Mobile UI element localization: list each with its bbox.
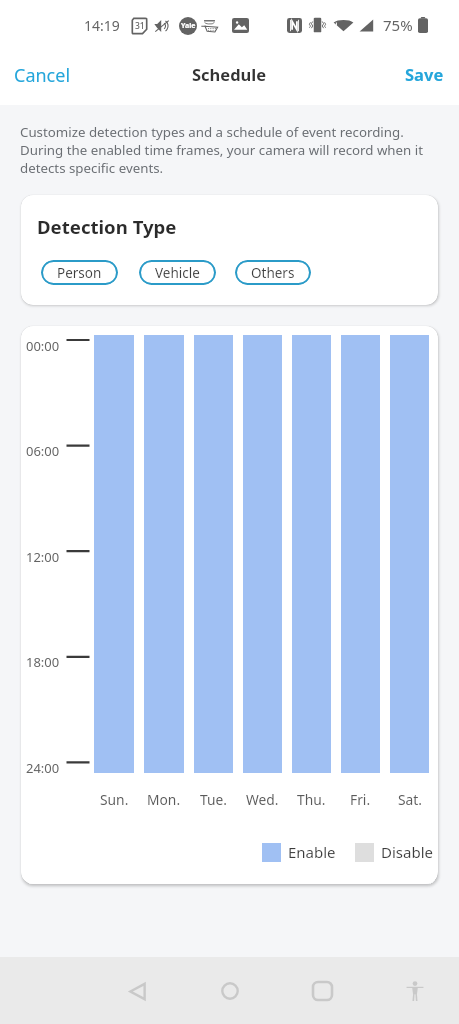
button[interactable]: Others xyxy=(235,260,311,285)
staticText: 24:00 xyxy=(26,759,60,777)
staticText: Others xyxy=(251,264,295,282)
staticText: 12:00 xyxy=(26,548,60,566)
staticText: Mon. xyxy=(147,790,181,809)
staticText: Vehicle xyxy=(155,264,200,282)
staticText: Fri. xyxy=(350,790,371,809)
staticText: 75% xyxy=(383,15,413,35)
staticText: Cancel xyxy=(14,63,71,88)
staticText: Yale xyxy=(181,21,196,31)
button[interactable]: Accessibility xyxy=(395,971,435,1011)
staticText: Sat. xyxy=(398,790,422,809)
staticText: Customize detection types and a schedule… xyxy=(20,123,429,177)
staticText: 00:00 xyxy=(26,337,60,355)
staticText: Sun. xyxy=(100,790,129,809)
button[interactable]: Back xyxy=(115,969,159,1013)
staticText: 14:19 xyxy=(84,16,120,35)
staticText: Disable xyxy=(381,842,433,862)
button[interactable]: Home xyxy=(208,969,252,1013)
staticText: Save xyxy=(405,63,444,85)
staticText: Tue. xyxy=(200,790,227,809)
staticText: 06:00 xyxy=(26,442,60,460)
staticText: 18:00 xyxy=(26,653,60,671)
button[interactable]: Cancel xyxy=(0,53,85,105)
button[interactable]: Person xyxy=(41,260,118,285)
staticText: Enable xyxy=(288,842,336,862)
staticText: Detection Type xyxy=(37,214,177,239)
button[interactable]: Vehicle xyxy=(139,260,216,285)
staticText: Thu. xyxy=(297,790,326,809)
button[interactable]: Save xyxy=(391,53,459,105)
staticText: Person xyxy=(57,264,102,282)
staticText: Schedule xyxy=(192,63,267,85)
button[interactable]: Recents xyxy=(300,969,344,1013)
staticText: Wed. xyxy=(246,790,279,809)
staticText: 31 xyxy=(135,20,145,32)
